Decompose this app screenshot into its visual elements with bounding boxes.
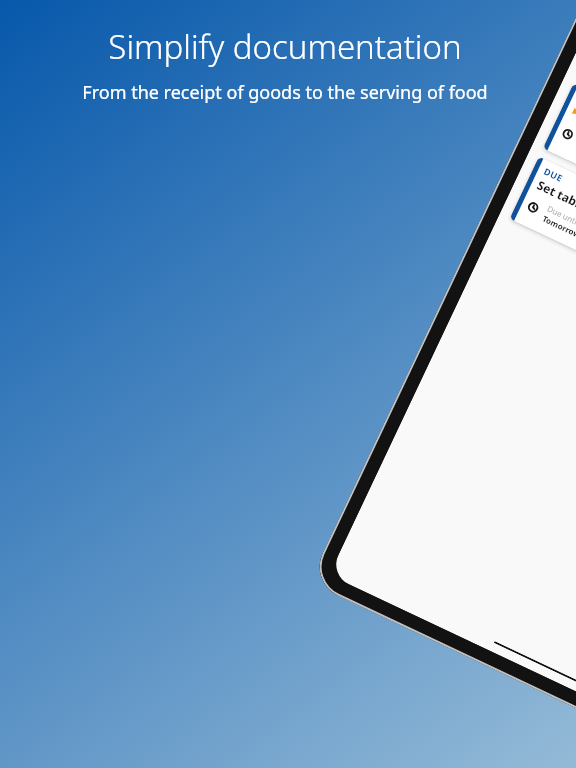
staticText: From the receipt of goods to the serving… [82,80,488,105]
staticText: Simplify documentation [108,24,462,69]
staticText: Tomorrow [541,213,576,240]
staticText: Set table [535,176,576,214]
button[interactable]: DUE [543,83,576,372]
button[interactable]: DUE [509,156,576,443]
staticText: DUE [542,165,565,184]
staticText: Due until [545,203,576,228]
